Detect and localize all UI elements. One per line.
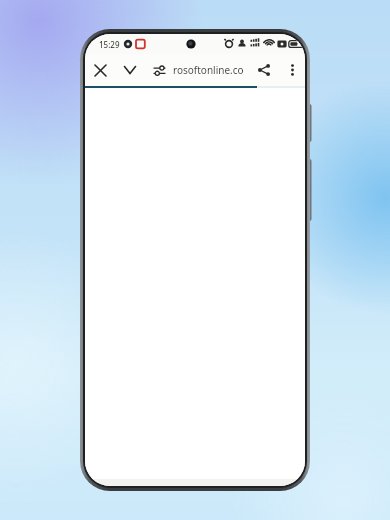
button[interactable]: More options	[279, 57, 305, 83]
button[interactable]: Collapse	[115, 55, 145, 85]
button[interactable]: rosoftonline.com	[173, 54, 249, 86]
button[interactable]: Close	[85, 55, 115, 85]
staticText: rosoftonline.com	[173, 63, 249, 77]
button[interactable]: Share	[249, 55, 279, 85]
staticText: 15:29	[99, 39, 120, 50]
button[interactable]: Site settings	[145, 56, 173, 84]
